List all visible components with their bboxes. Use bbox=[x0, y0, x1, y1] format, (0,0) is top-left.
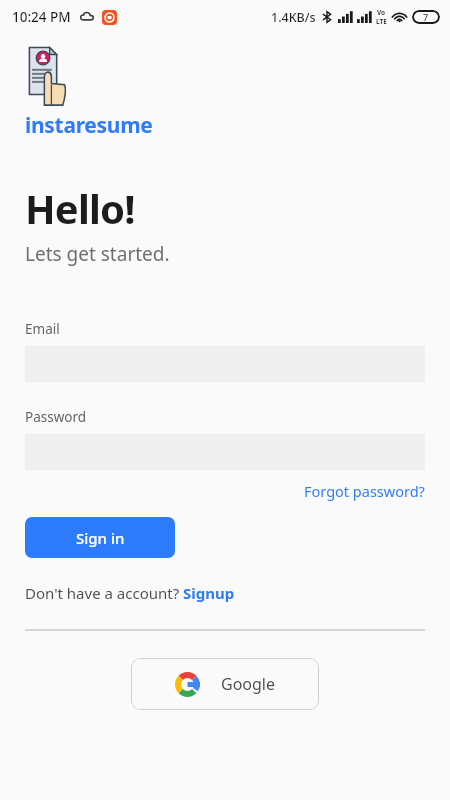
button[interactable]: Google bbox=[131, 658, 319, 710]
staticText: 1.4KB/s bbox=[271, 9, 316, 26]
staticText: Vo bbox=[377, 8, 386, 17]
staticText: Password bbox=[25, 408, 87, 426]
staticText: Lets get started. bbox=[25, 241, 170, 267]
staticText: Google bbox=[221, 673, 276, 695]
staticText: 10:24 PM bbox=[12, 8, 71, 26]
staticText: Hello! bbox=[25, 181, 135, 235]
staticText: LTE bbox=[376, 17, 387, 26]
button[interactable]: Don't have a account? Signup bbox=[25, 583, 235, 603]
button[interactable]: Forgot password? bbox=[304, 481, 425, 501]
staticText: 7 bbox=[423, 11, 429, 23]
staticText: Forgot password? bbox=[304, 481, 425, 501]
staticText: Sign in bbox=[76, 528, 125, 548]
staticText: Email bbox=[25, 320, 60, 338]
staticText: instaresume bbox=[25, 111, 153, 140]
button[interactable]: Sign in bbox=[25, 517, 175, 558]
